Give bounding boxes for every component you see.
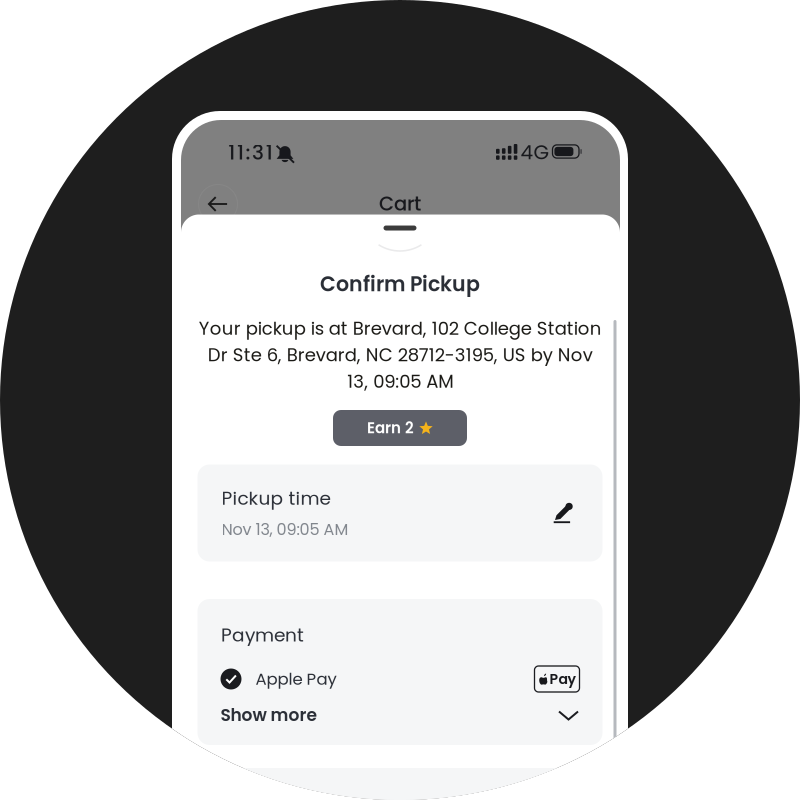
button[interactable]: Pickup time: [221, 464, 578, 561]
button[interactable]: Back: [198, 184, 237, 223]
staticText: Earn 2: [367, 417, 414, 438]
staticText: Show more: [220, 703, 316, 727]
staticText: Pay: [549, 669, 575, 689]
button[interactable]: Apple Pay: [220, 664, 579, 694]
staticText: Nov 13, 09:05 AM: [221, 518, 348, 541]
button[interactable]: Earn 2: [333, 410, 467, 446]
staticText: Your pickup is at Brevard, 102 College S…: [198, 316, 601, 394]
staticText: 4G: [520, 138, 549, 166]
staticText: Cart: [379, 190, 421, 217]
staticText: Payment: [221, 622, 304, 648]
staticText: Apple Pay: [255, 667, 336, 690]
button[interactable]: Show more: [220, 702, 579, 728]
staticText: 11:31: [228, 138, 273, 166]
staticText: Confirm Pickup: [320, 270, 480, 298]
staticText: Pickup time: [221, 485, 330, 511]
